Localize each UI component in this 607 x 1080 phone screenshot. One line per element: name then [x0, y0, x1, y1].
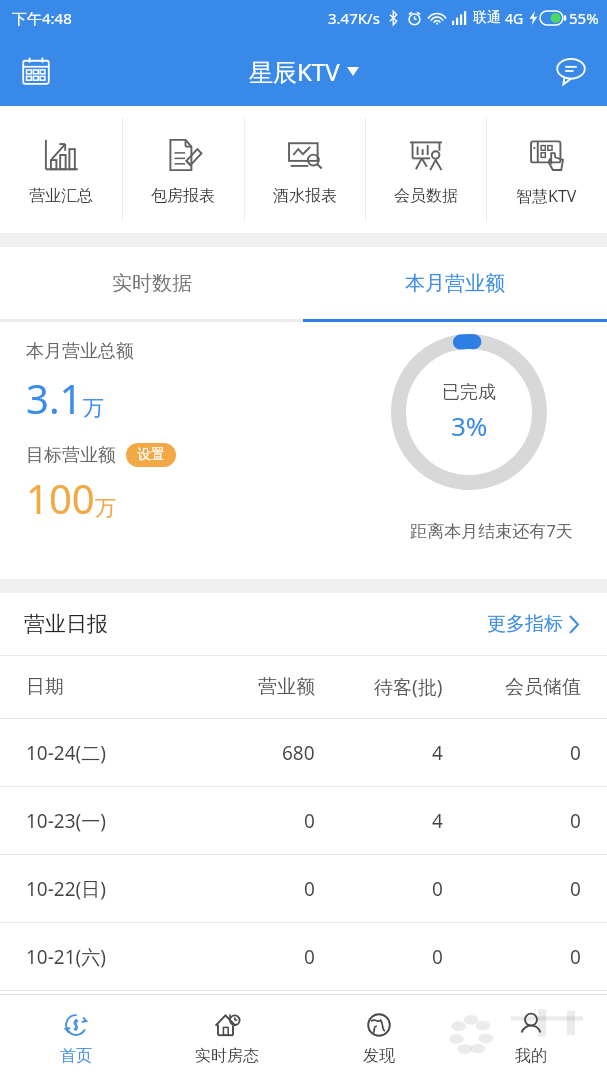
- staticText: 距离本月结束还有7天: [410, 519, 573, 542]
- button[interactable]: 10-22(日): [0, 855, 607, 922]
- staticText: 10-24(二): [26, 740, 106, 766]
- button[interactable]: 本月营业额: [303, 247, 607, 319]
- staticText: 万: [83, 395, 104, 421]
- staticText: 我的: [515, 1046, 547, 1066]
- staticText: 本月营业总额: [26, 340, 134, 363]
- staticText: 发现: [363, 1046, 395, 1066]
- staticText: 0: [570, 944, 581, 970]
- staticText: 设置: [137, 446, 165, 464]
- staticText: 0: [570, 740, 581, 766]
- button[interactable]: 日历: [8, 43, 64, 99]
- staticText: 10-22(日): [26, 876, 106, 902]
- button[interactable]: 消息: [543, 43, 599, 99]
- staticText: 实时房态: [195, 1046, 259, 1066]
- button[interactable]: 营业汇总: [0, 106, 122, 233]
- staticText: 4: [432, 808, 443, 834]
- button[interactable]: 实时房态: [151, 995, 303, 1080]
- staticText: 营业汇总: [29, 186, 93, 206]
- staticText: 万: [95, 495, 116, 521]
- staticText: 会员数据: [394, 186, 458, 206]
- button[interactable]: 酒水报表: [244, 106, 365, 233]
- staticText: 0: [570, 808, 581, 834]
- button[interactable]: 首页: [0, 995, 151, 1080]
- staticText: 4: [432, 740, 443, 766]
- button[interactable]: 星辰KTV: [239, 49, 369, 94]
- button[interactable]: 更多指标: [483, 608, 583, 640]
- staticText: 3.47K/s: [328, 8, 380, 28]
- staticText: 目标营业额: [26, 444, 116, 467]
- staticText: 0: [570, 876, 581, 902]
- staticText: 已完成: [442, 381, 496, 404]
- staticText: 营业日报: [24, 611, 108, 637]
- staticText: 首页: [60, 1046, 92, 1066]
- staticText: 待客(批): [374, 674, 443, 700]
- staticText: 10-23(一): [26, 808, 106, 834]
- staticText: 0: [304, 876, 315, 902]
- staticText: 0: [432, 944, 443, 970]
- staticText: 更多指标: [487, 612, 563, 636]
- staticText: 55%: [569, 8, 599, 28]
- button[interactable]: 设置: [126, 443, 176, 467]
- staticText: 会员储值: [505, 675, 581, 699]
- staticText: 日期: [26, 675, 64, 699]
- staticText: 本月营业额: [405, 271, 505, 296]
- staticText: 3.1: [26, 371, 83, 425]
- staticText: 下午4:48: [12, 8, 72, 28]
- button[interactable]: 10-21(六): [0, 923, 607, 990]
- staticText: 营业额: [258, 675, 315, 699]
- staticText: 680: [282, 740, 315, 766]
- staticText: 3%: [451, 408, 488, 443]
- button[interactable]: 实时数据: [0, 247, 303, 319]
- button[interactable]: 包房报表: [122, 106, 244, 233]
- staticText: 联通: [473, 9, 501, 27]
- staticText: 4G: [505, 9, 524, 28]
- button[interactable]: 发现: [303, 995, 455, 1080]
- button[interactable]: 10-23(一): [0, 787, 607, 854]
- button[interactable]: 会员数据: [365, 106, 486, 233]
- staticText: 10-21(六): [26, 944, 106, 970]
- staticText: 包房报表: [151, 186, 215, 206]
- button[interactable]: 智慧KTV: [486, 106, 607, 233]
- staticText: 酒水报表: [273, 186, 337, 206]
- staticText: 0: [304, 944, 315, 970]
- staticText: 0: [432, 876, 443, 902]
- staticText: 100: [26, 471, 95, 525]
- staticText: 0: [304, 808, 315, 834]
- staticText: 实时数据: [112, 271, 192, 296]
- button[interactable]: 我的: [455, 995, 607, 1080]
- staticText: 智慧KTV: [516, 185, 577, 207]
- button[interactable]: 10-24(二): [0, 719, 607, 786]
- staticText: 星辰KTV: [249, 55, 340, 88]
